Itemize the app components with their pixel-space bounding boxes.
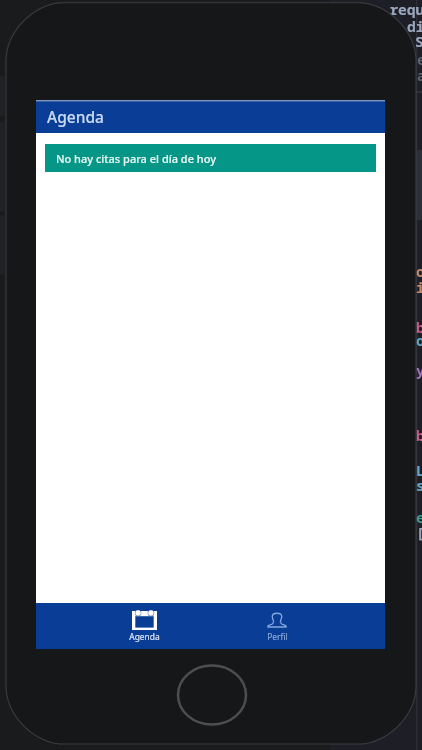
staticText: [ [416, 522, 422, 542]
staticText: St [415, 31, 422, 51]
staticText: b [416, 317, 422, 337]
staticText: o [416, 261, 422, 281]
staticText: e [416, 507, 422, 527]
staticText: L [416, 460, 422, 480]
button[interactable]: Perfil [222, 603, 332, 649]
staticText: Perfil [267, 631, 288, 642]
staticText: s [416, 475, 422, 495]
staticText: Agenda [129, 631, 160, 642]
staticText: a [417, 65, 422, 85]
staticText: y [416, 360, 422, 380]
staticText: e [417, 49, 422, 69]
staticText: i [416, 277, 422, 297]
staticText: s requi [372, 0, 422, 19]
staticText: No hay citas para el día de hoy [56, 151, 217, 166]
staticText: dis [407, 16, 422, 36]
button[interactable]: Agenda [36, 100, 385, 133]
staticText: b [416, 425, 422, 445]
staticText: Agenda [47, 106, 104, 127]
button[interactable]: Agenda [89, 603, 199, 649]
staticText: o [416, 330, 422, 350]
button[interactable]: No hay citas para el día de hoy [45, 144, 376, 172]
